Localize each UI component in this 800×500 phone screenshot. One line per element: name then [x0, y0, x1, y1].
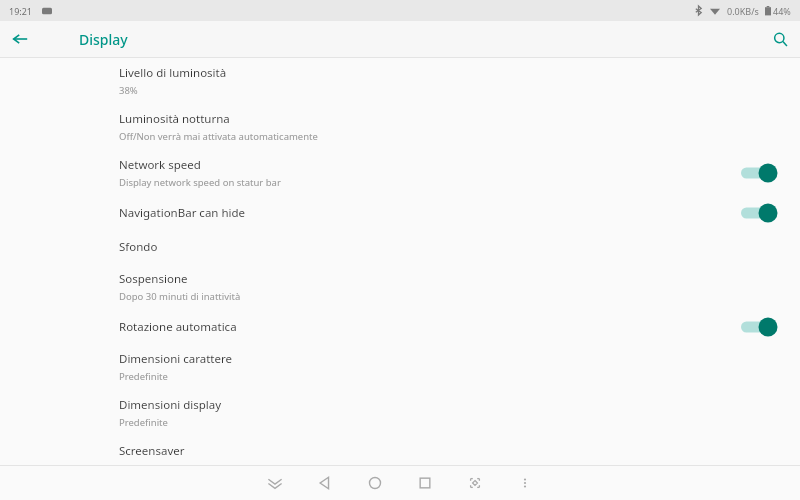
staticText: Rotazione automatica	[119, 319, 237, 335]
button[interactable]: Screensaver	[0, 436, 800, 465]
button[interactable]: Rotazione automatica	[0, 310, 800, 344]
staticText: Display network speed on statur bar	[119, 176, 281, 189]
staticText: Dimensioni carattere	[119, 351, 232, 367]
staticText: NavigationBar can hide	[119, 205, 246, 221]
staticText: 0.0KB/s	[727, 5, 759, 17]
button[interactable]: Screenshot	[455, 466, 495, 500]
button[interactable]: Search	[760, 21, 800, 57]
button[interactable]: Network speed	[0, 150, 800, 196]
staticText: 44%	[773, 5, 791, 17]
button[interactable]: Recent apps	[405, 466, 445, 500]
staticText: Predefinite	[119, 370, 168, 383]
staticText: Screensaver	[119, 443, 185, 459]
staticText: Off/Non verrà mai attivata automaticamen…	[119, 130, 318, 143]
staticText: Display	[79, 30, 128, 49]
staticText: Sfondo	[119, 239, 158, 255]
button[interactable]: Hide navigation bar	[255, 466, 295, 500]
button[interactable]: NavigationBar can hide	[0, 196, 800, 230]
button[interactable]: Sfondo	[0, 230, 800, 264]
button[interactable]: More options	[505, 466, 545, 500]
button[interactable]: Toggle	[738, 314, 780, 340]
staticText: Predefinite	[119, 416, 168, 429]
button[interactable]: Home	[355, 466, 395, 500]
button[interactable]: Livello di luminosità	[0, 58, 800, 104]
staticText: Dopo 30 minuti di inattività	[119, 290, 241, 303]
button[interactable]: Dimensioni display	[0, 390, 800, 436]
button[interactable]: Back	[0, 21, 40, 57]
button[interactable]: Toggle	[738, 200, 780, 226]
staticText: Network speed	[119, 157, 201, 173]
button[interactable]: Dimensioni carattere	[0, 344, 800, 390]
staticText: Dimensioni display	[119, 397, 222, 413]
staticText: Livello di luminosità	[119, 65, 227, 81]
staticText: Sospensione	[119, 271, 188, 287]
button[interactable]: Sospensione	[0, 264, 800, 310]
button[interactable]: Luminosità notturna	[0, 104, 800, 150]
button[interactable]: Back	[305, 466, 345, 500]
staticText: 19:21	[9, 5, 33, 17]
staticText: Luminosità notturna	[119, 111, 230, 127]
button[interactable]: Toggle	[738, 160, 780, 186]
staticText: 38%	[119, 84, 138, 97]
